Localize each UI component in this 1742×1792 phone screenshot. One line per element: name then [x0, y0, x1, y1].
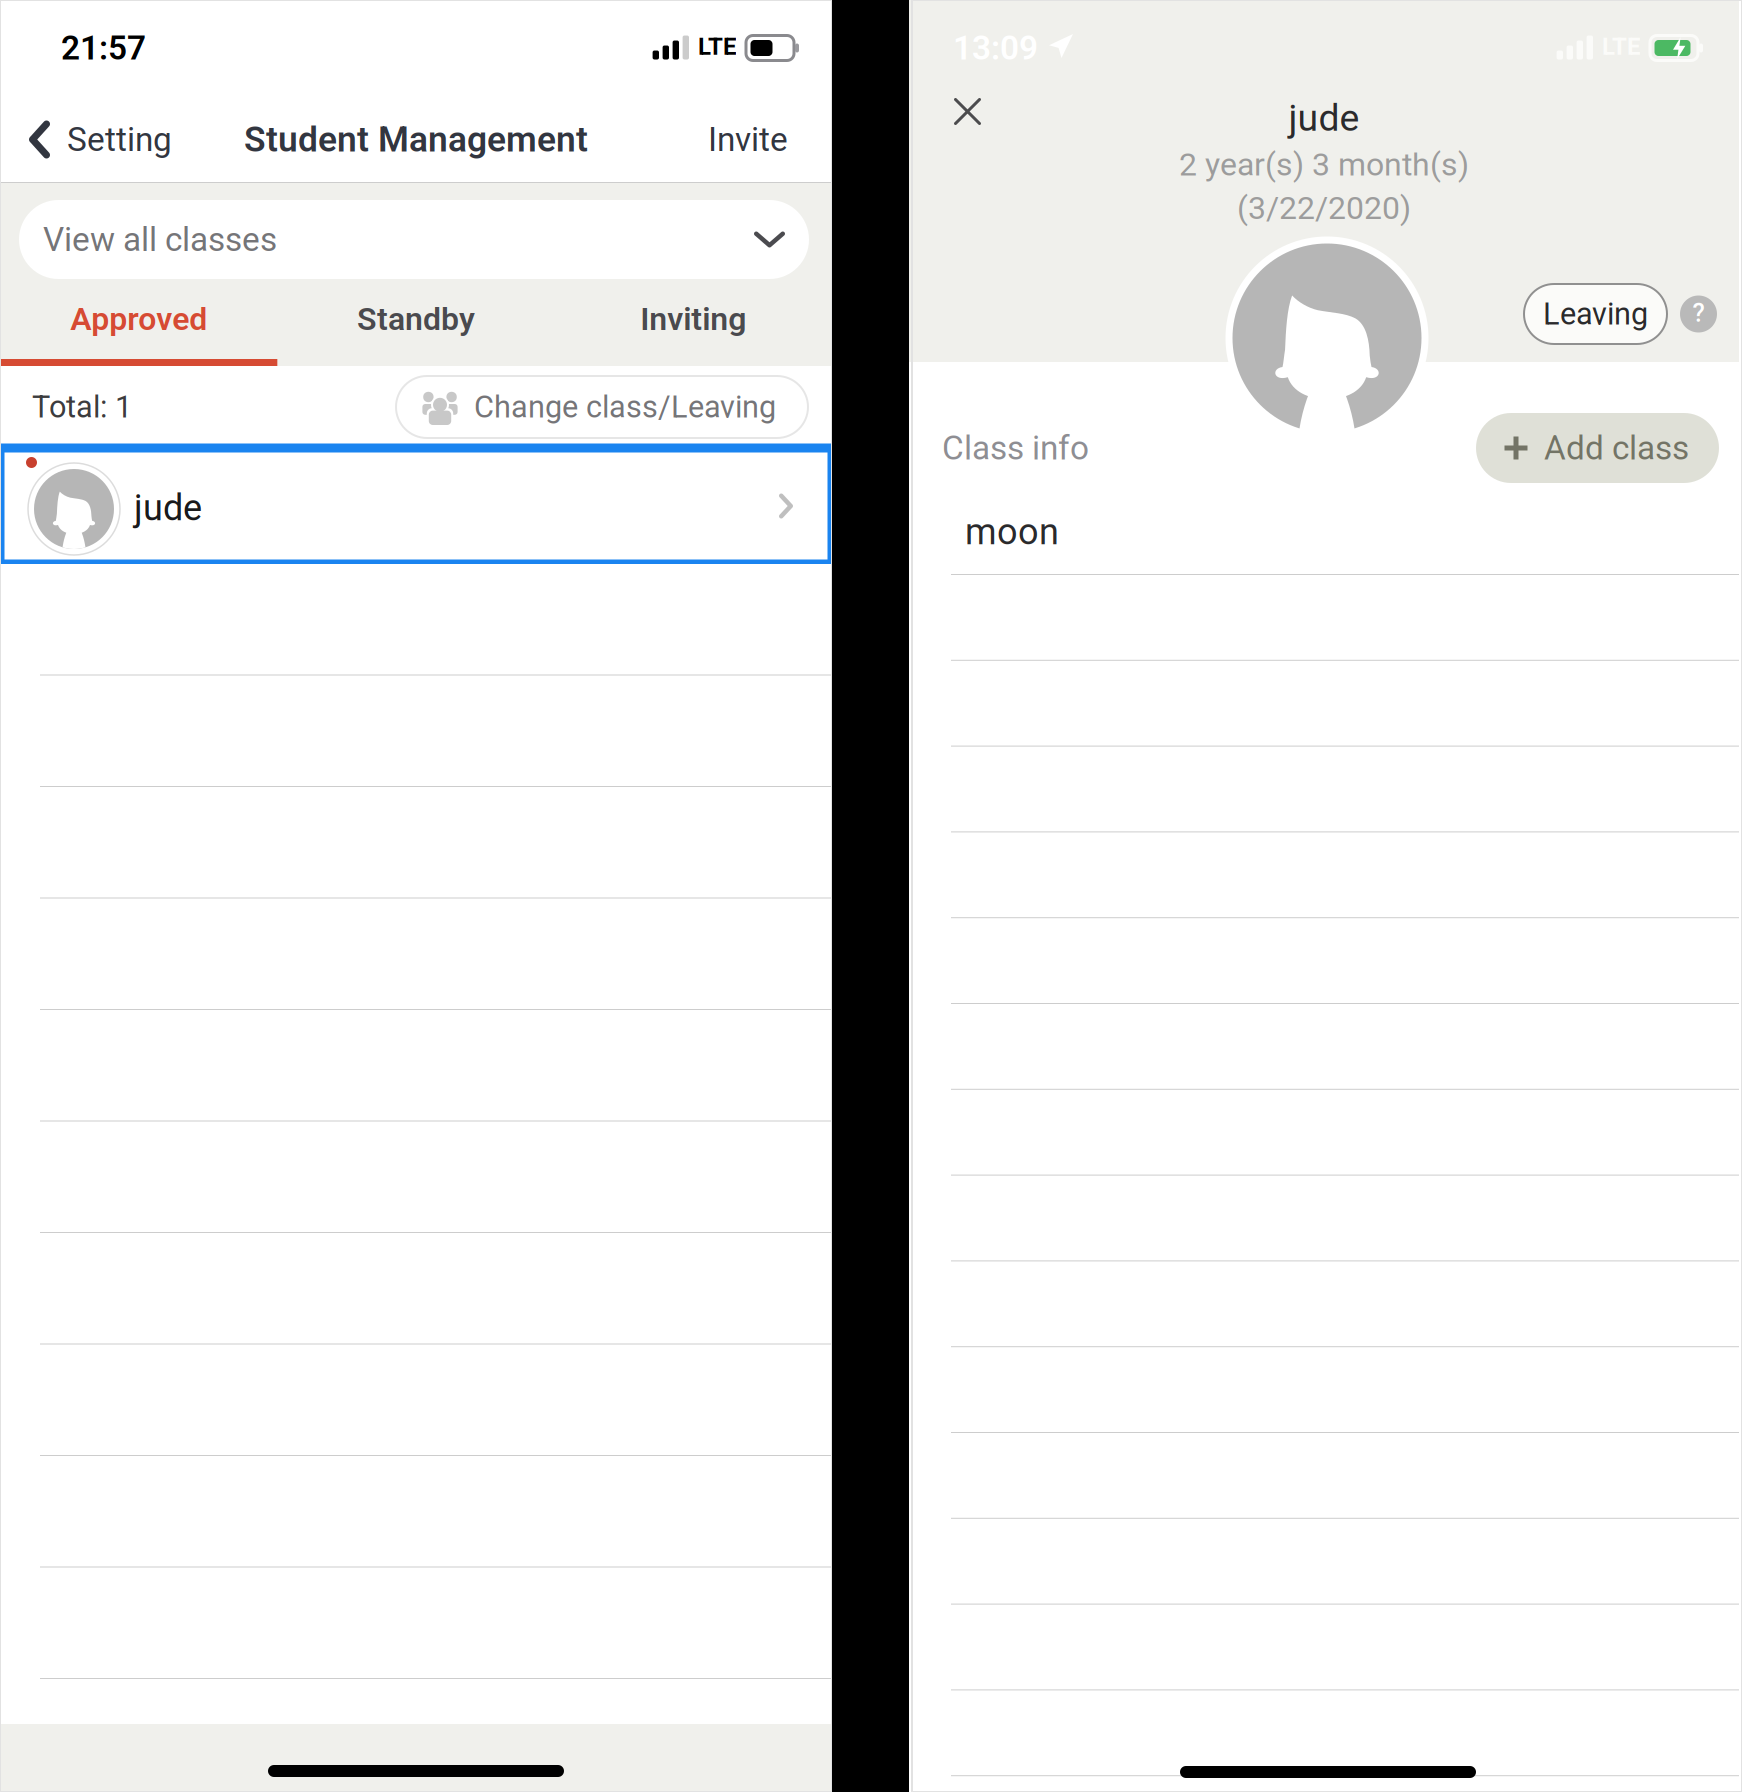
staticText: Total: 1 [32, 389, 132, 425]
staticText: Student Management [244, 119, 588, 160]
staticText: Change class/Leaving [474, 389, 776, 425]
staticText: jude [1288, 96, 1359, 140]
staticText: Setting [67, 120, 172, 159]
button[interactable]: Change class/Leaving [396, 376, 808, 438]
staticText: Invite [708, 120, 788, 159]
button[interactable]: View all classes [19, 200, 809, 279]
staticText: 13:09 [953, 28, 1038, 68]
staticText: LTE [698, 32, 737, 60]
button[interactable]: Help [1667, 284, 1739, 343]
staticText: ? [1692, 298, 1704, 328]
button[interactable]: Standby [277, 279, 555, 366]
staticText: jude [134, 487, 202, 529]
staticText: (3/22/2020) [1237, 189, 1411, 227]
staticText: moon [965, 511, 1059, 553]
staticText: Approved [70, 300, 207, 338]
staticText: Standby [357, 300, 475, 338]
staticText: Inviting [640, 300, 746, 338]
button[interactable]: Setting [0, 96, 192, 183]
button[interactable]: Leaving [1524, 284, 1667, 344]
staticText: 21:57 [61, 28, 146, 68]
button[interactable]: Inviting [555, 279, 832, 366]
button[interactable]: Close [932, 76, 1003, 147]
staticText: Class info [942, 428, 1089, 468]
staticText: LTE [1602, 32, 1641, 60]
staticText: 2 year(s) 3 month(s) [1179, 146, 1469, 183]
button[interactable]: Add class [1476, 413, 1719, 483]
button[interactable]: Approved [0, 279, 277, 366]
staticText: Leaving [1543, 296, 1648, 332]
staticText: View all classes [43, 220, 277, 259]
button[interactable]: Invite [688, 96, 832, 183]
staticText: Add class [1544, 428, 1689, 468]
button[interactable]: jude [0, 448, 832, 564]
